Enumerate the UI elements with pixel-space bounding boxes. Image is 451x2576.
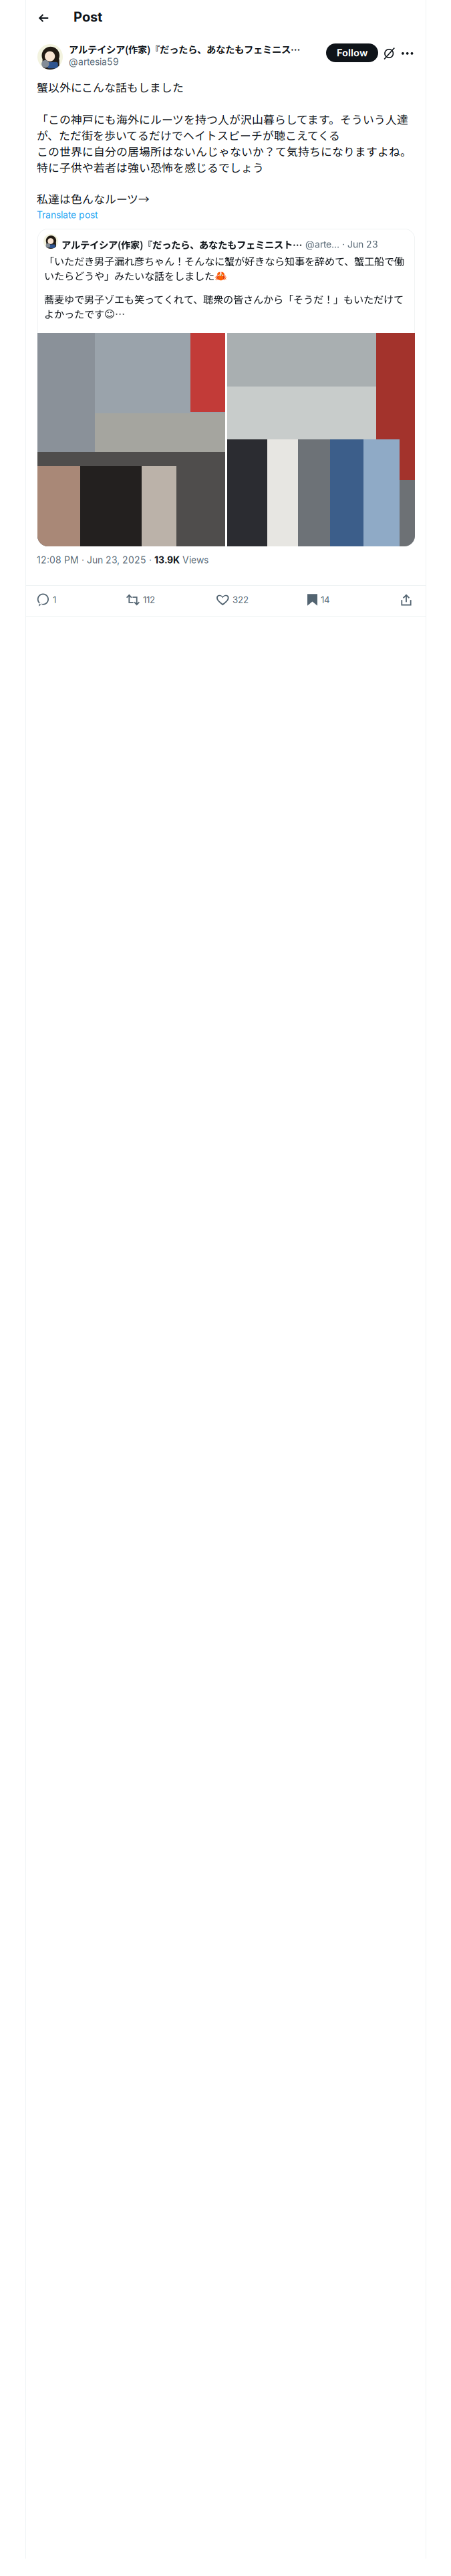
staticText: Post bbox=[73, 9, 102, 25]
staticText: 12:08 PM · Jun 23, 2025 · bbox=[37, 554, 154, 566]
staticText: Translate post bbox=[37, 209, 98, 221]
staticText: Follow bbox=[337, 47, 367, 59]
button[interactable]: More options bbox=[402, 52, 413, 55]
staticText: 112 bbox=[143, 594, 155, 605]
staticText: 蕎麦ゆで男子ゾエも笑ってくれて、聴衆の皆さんから「そうだ！」もいただけて bbox=[44, 292, 404, 306]
staticText: 私達は色んなルーツ→ bbox=[37, 190, 150, 207]
staticText: が、ただ街を歩いてるだけでヘイトスピーチが聴こえてくる bbox=[37, 127, 340, 143]
staticText: @artesia59 bbox=[69, 56, 119, 67]
button[interactable]: アルテイシア(作家)『だったら、あなたもフェミニスト… bbox=[37, 229, 415, 546]
staticText: 特に子供や若者は強い恐怖を感じるでしょう bbox=[37, 159, 264, 175]
staticText: 14 bbox=[321, 594, 330, 605]
staticText: アルテイシア(作家)『だったら、あなたもフェミニス… bbox=[69, 42, 300, 56]
button[interactable]: 112 bbox=[126, 590, 216, 610]
staticText: 322 bbox=[233, 594, 249, 605]
button[interactable]: 14 bbox=[307, 590, 389, 610]
button[interactable]: Follow bbox=[326, 43, 378, 62]
staticText: この世界に自分の居場所はないんじゃないか？て気持ちになりますよね。 bbox=[37, 143, 412, 159]
staticText: 「いただき男子漏れ彦ちゃん！そんなに蟹が好きなら知事を辞めて、蟹工船で働 bbox=[44, 253, 404, 268]
button[interactable]: Translate post bbox=[37, 207, 98, 221]
button[interactable]: Post bbox=[73, 9, 102, 25]
staticText: 「この神戸にも海外にルーツを持つ人が沢山暮らしてます。そういう人達 bbox=[37, 111, 408, 127]
staticText: · Jun 23 bbox=[342, 239, 378, 250]
staticText: 蟹以外にこんな話もしました bbox=[37, 79, 184, 95]
staticText: よかったです☺… bbox=[44, 306, 125, 321]
button[interactable]: Share bbox=[396, 590, 416, 610]
staticText: 1 bbox=[53, 594, 56, 605]
staticText: アルテイシア(作家)『だったら、あなたもフェミニスト… bbox=[61, 237, 302, 251]
button[interactable]: アルテイシア(作家)『だったら、あなたもフェミニス… bbox=[69, 42, 300, 67]
button[interactable]: 322 bbox=[216, 590, 307, 610]
staticText: @arte… bbox=[305, 239, 339, 250]
staticText: Views bbox=[180, 554, 208, 566]
staticText: いたらどうや」みたいな話をしました🦀 bbox=[44, 268, 227, 283]
staticText: 13.9K bbox=[154, 554, 180, 566]
button[interactable]: Back bbox=[32, 7, 55, 29]
button[interactable]: 1 bbox=[37, 590, 126, 610]
button[interactable]: Grok bbox=[384, 47, 395, 60]
button[interactable]: Profile photo bbox=[37, 44, 63, 70]
